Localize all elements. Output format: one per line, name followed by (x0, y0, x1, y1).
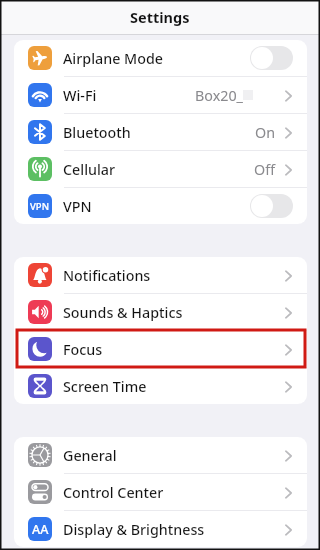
button[interactable]: General (14, 437, 307, 473)
staticText: VPN (30, 200, 50, 213)
button[interactable]: Notifications (14, 257, 307, 293)
button[interactable]: Cellular (14, 151, 307, 187)
button[interactable]: Wi-Fi (14, 77, 307, 113)
staticText: On (255, 123, 276, 142)
button[interactable]: VPN (14, 188, 307, 224)
staticText: VPN (63, 197, 92, 216)
staticText: Airplane Mode (63, 49, 163, 68)
staticText: Cellular (63, 160, 116, 179)
staticText: Box20_ (195, 86, 243, 105)
button[interactable]: Toggle (250, 46, 293, 70)
staticText: Bluetooth (63, 123, 131, 142)
staticText: Off (254, 160, 276, 179)
button[interactable]: Focus (14, 331, 307, 367)
button[interactable]: Bluetooth (14, 114, 307, 150)
button[interactable]: Screen Time (14, 368, 307, 404)
staticText: Notifications (63, 266, 151, 285)
staticText: AA (32, 521, 49, 538)
button[interactable]: AA (14, 511, 307, 547)
staticText: Wi-Fi (63, 86, 97, 105)
staticText: Display & Brightness (63, 520, 205, 539)
staticText: Screen Time (63, 377, 147, 396)
staticText: Focus (63, 340, 103, 359)
button[interactable]: Sounds & Haptics (14, 294, 307, 330)
button[interactable]: Toggle (250, 194, 293, 218)
staticText: General (63, 446, 117, 465)
staticText: Settings (130, 7, 190, 27)
button[interactable]: Control Center (14, 474, 307, 510)
staticText: Sounds & Haptics (63, 303, 183, 322)
button[interactable]: Airplane Mode (14, 40, 307, 76)
staticText: Control Center (63, 483, 164, 502)
